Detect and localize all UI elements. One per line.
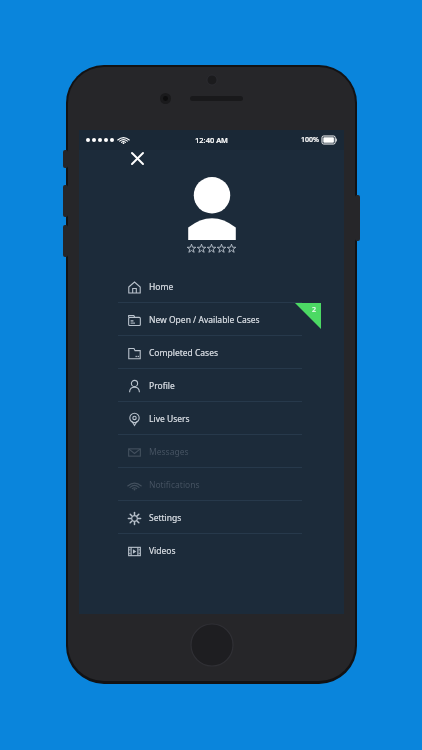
button[interactable]: New Open / Available Cases — [79, 303, 344, 336]
staticText: Completed Cases — [149, 347, 219, 359]
staticText: Live Users — [149, 413, 190, 425]
staticText: Messages — [149, 446, 189, 458]
staticText: 100% — [301, 135, 319, 145]
staticText: Home — [149, 281, 174, 293]
staticText: 12:40 AM — [195, 135, 228, 145]
staticText: Settings — [149, 512, 182, 524]
button[interactable]: Live Users — [79, 402, 344, 435]
staticText: 2 — [312, 305, 317, 315]
button[interactable]: Messages — [79, 435, 344, 468]
button[interactable]: Notifications — [79, 468, 344, 501]
button[interactable]: Close — [126, 147, 148, 169]
staticText: New Open / Available Cases — [149, 314, 260, 326]
button[interactable]: Videos — [79, 534, 344, 567]
button[interactable]: Home — [79, 270, 344, 303]
staticText: Videos — [149, 545, 176, 557]
staticText: Notifications — [149, 479, 200, 491]
staticText: Profile — [149, 380, 175, 392]
button[interactable]: Settings — [79, 501, 344, 534]
button[interactable]: Completed Cases — [79, 336, 344, 369]
button[interactable]: Profile — [79, 369, 344, 402]
